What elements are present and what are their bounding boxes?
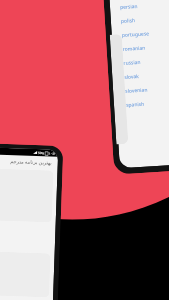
button[interactable]: slovenian: [125, 79, 169, 98]
staticText: ۱۰:۵: [49, 151, 55, 156]
button[interactable]: portuguese: [121, 23, 169, 42]
button[interactable]: polish: [120, 9, 169, 28]
button[interactable]: russian: [123, 51, 169, 70]
staticText: slovak: [124, 73, 139, 81]
staticText: persian: [120, 3, 138, 11]
staticText: 50%: [38, 151, 44, 155]
button[interactable]: romanian: [122, 37, 169, 56]
button[interactable]: slovak: [124, 65, 169, 84]
staticText: russian: [123, 59, 142, 67]
button[interactable]: persian: [120, 0, 169, 14]
staticText: portuguese: [122, 30, 150, 39]
button[interactable]: spanish: [126, 93, 169, 112]
staticText: polish: [121, 17, 136, 25]
staticText: slovenian: [125, 86, 148, 95]
staticText: romanian: [122, 44, 146, 53]
staticText: spanish: [126, 101, 145, 109]
staticText: بهترین برنامه مترجم: [10, 158, 52, 167]
